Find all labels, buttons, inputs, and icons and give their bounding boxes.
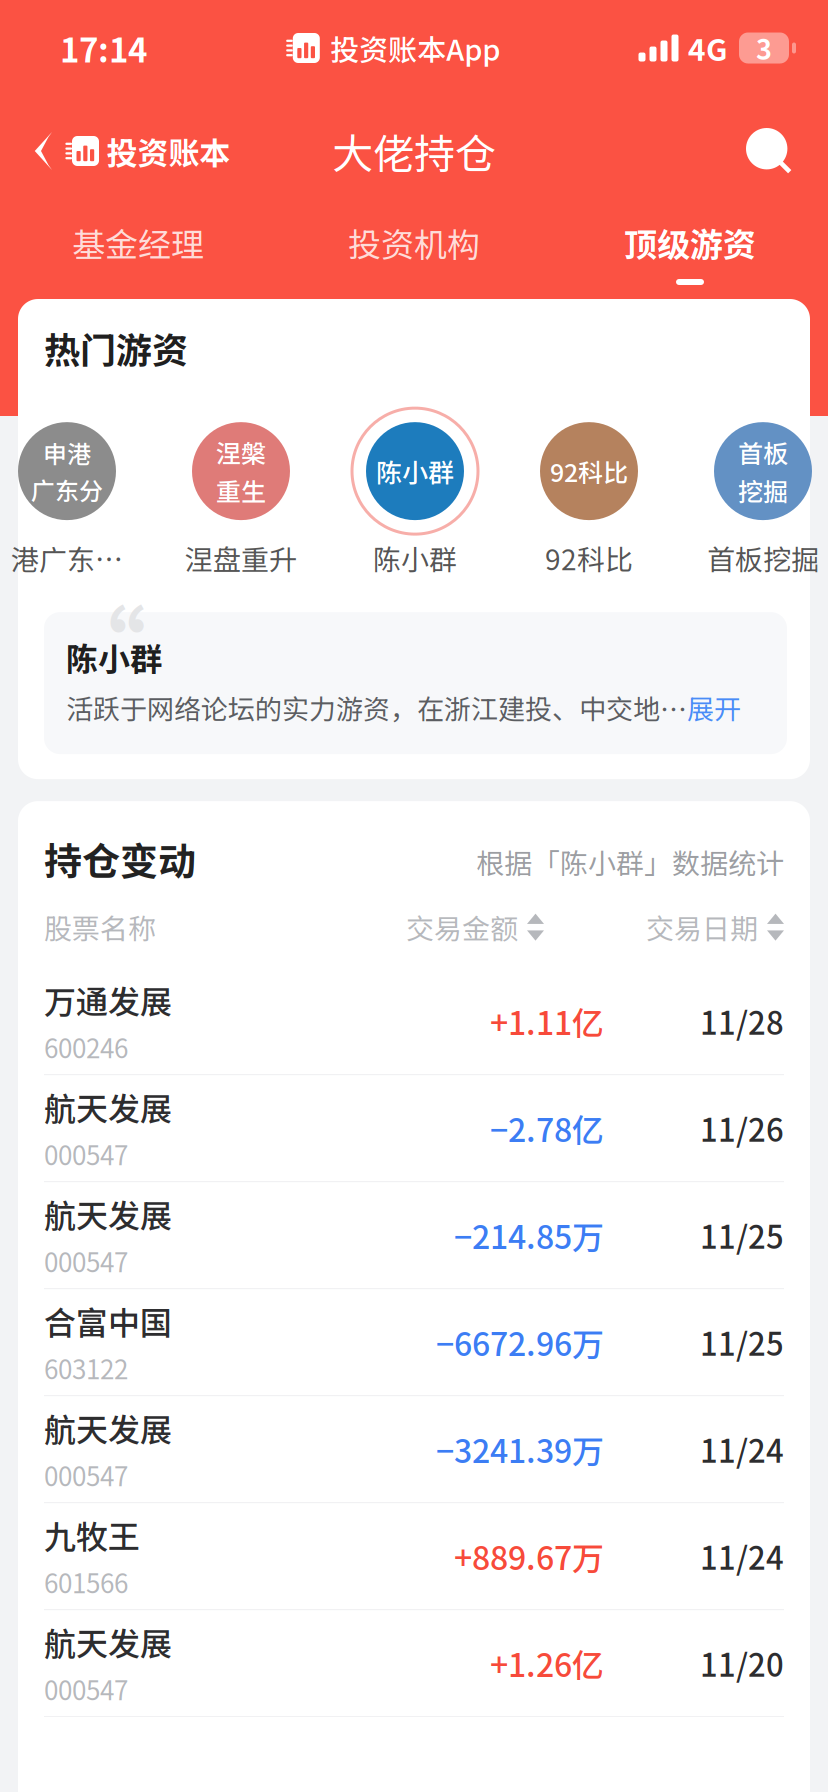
staticText: 申港	[43, 435, 91, 470]
staticText: 000547	[44, 1670, 128, 1708]
staticText: 大佬持仓	[332, 121, 496, 181]
button[interactable]: 涅槃	[154, 406, 328, 580]
staticText: 港广东…	[11, 538, 123, 578]
button[interactable]: 投资机构	[276, 206, 552, 298]
staticText: 92科比	[550, 453, 628, 489]
staticText: 股票名称	[44, 907, 156, 947]
staticText: +1.11亿	[490, 998, 604, 1044]
staticText: 陈小群	[373, 538, 457, 578]
staticText: 92科比	[545, 538, 633, 578]
button[interactable]: 航天发展	[18, 1182, 810, 1289]
staticText: 九牧王	[44, 1512, 140, 1558]
staticText: 顶级游资	[624, 219, 756, 266]
staticText: 基金经理	[72, 219, 204, 266]
staticText: 600246	[44, 1028, 128, 1066]
staticText: 4G	[688, 26, 728, 70]
button[interactable]: 航天发展	[18, 1075, 810, 1182]
staticText: 根据「陈小群」数据统计	[476, 842, 784, 882]
button[interactable]: 万通发展	[18, 968, 810, 1075]
staticText: 交易金额	[406, 907, 518, 947]
staticText: −2.78亿	[490, 1105, 604, 1151]
staticText: 11/20	[700, 1641, 784, 1686]
staticText: 11/25	[700, 1213, 784, 1258]
staticText: 航天发展	[44, 1191, 172, 1237]
staticText: 活跃于网络论坛的实力游资，在浙江建投、中交地…	[66, 688, 687, 727]
staticText: 11/28	[700, 999, 784, 1044]
staticText: 涅盘重升	[185, 538, 297, 578]
staticText: 11/24	[700, 1534, 784, 1579]
button[interactable]: 合富中国	[18, 1289, 810, 1396]
staticText: 3	[756, 28, 772, 68]
staticText: 挖掘	[738, 472, 788, 508]
staticText: 展开	[687, 688, 741, 727]
staticText: 000547	[44, 1135, 128, 1173]
staticText: 11/26	[700, 1106, 784, 1151]
staticText: 航天发展	[44, 1084, 172, 1130]
button[interactable]: 航天发展	[18, 1396, 810, 1503]
staticText: 000547	[44, 1456, 128, 1494]
staticText: “	[56, 578, 146, 708]
staticText: 广东分	[31, 472, 103, 507]
button[interactable]: 首板	[676, 406, 828, 580]
staticText: 涅槃	[216, 434, 266, 470]
button[interactable]: 基金经理	[0, 206, 276, 298]
staticText: 陈小群	[376, 452, 454, 490]
staticText: 000547	[44, 1242, 128, 1280]
staticText: 首板挖掘	[707, 538, 819, 578]
staticText: 首板	[738, 434, 788, 470]
staticText: 航天发展	[44, 1619, 172, 1665]
staticText: −3241.39万	[436, 1426, 604, 1472]
staticText: −214.85万	[454, 1212, 604, 1258]
staticText: 601566	[44, 1563, 128, 1601]
button[interactable]: 投资账本	[0, 96, 230, 206]
staticText: +889.67万	[454, 1533, 604, 1579]
staticText: 持仓变动	[44, 831, 196, 886]
staticText: 合富中国	[44, 1298, 172, 1344]
staticText: 投资账本	[106, 129, 230, 173]
staticText: 热门游资	[44, 322, 188, 374]
staticText: 万通发展	[44, 977, 172, 1023]
button[interactable]: 航天发展	[18, 1610, 810, 1717]
staticText: 603122	[44, 1349, 128, 1387]
button[interactable]: 92科比	[502, 406, 676, 580]
staticText: 航天发展	[44, 1405, 172, 1451]
button[interactable]: 申港	[0, 406, 154, 580]
staticText: 11/24	[700, 1427, 784, 1472]
staticText: −6672.96万	[436, 1319, 604, 1365]
staticText: 11/25	[700, 1320, 784, 1365]
button[interactable]: 顶级游资	[552, 206, 828, 298]
staticText: 交易日期	[646, 907, 758, 947]
staticText: 重生	[216, 472, 266, 508]
staticText: 陈小群	[66, 634, 162, 680]
staticText: 17:14	[60, 24, 147, 72]
staticText: +1.26亿	[490, 1640, 604, 1686]
button[interactable]: 九牧王	[18, 1503, 810, 1610]
staticText: 投资账本App	[330, 27, 500, 69]
button[interactable]: Search	[746, 96, 828, 206]
staticText: 投资机构	[348, 219, 480, 266]
button[interactable]: 陈小群	[328, 406, 502, 580]
